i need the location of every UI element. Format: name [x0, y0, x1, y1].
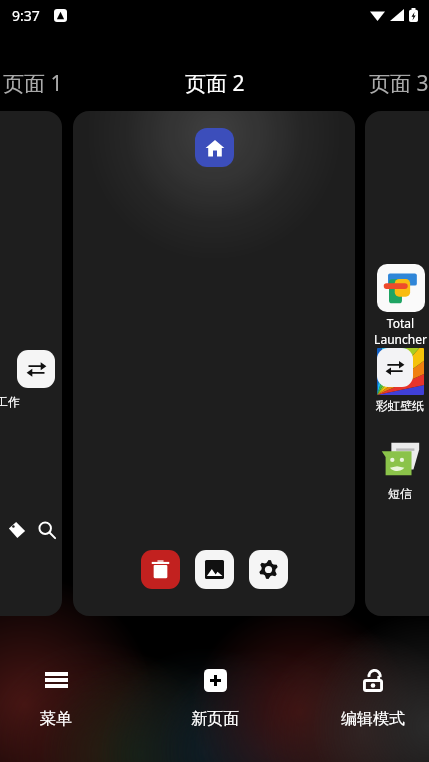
button[interactable]: 编辑模式 — [314, 662, 429, 735]
staticText: 工作 — [0, 394, 20, 409]
button[interactable]: Delete — [141, 550, 180, 589]
button[interactable]: Home — [73, 111, 355, 616]
staticText: 9:37 — [12, 6, 40, 25]
button[interactable]: Total Launcher — [365, 111, 429, 616]
button[interactable]: Total Launcher — [368, 264, 429, 347]
staticText: 菜单 — [40, 709, 72, 729]
button[interactable]: Settings — [249, 550, 288, 589]
button[interactable]: Home — [195, 128, 234, 167]
staticText: 短信 — [388, 486, 412, 501]
staticText: 编辑模式 — [341, 709, 405, 729]
button[interactable]: 短信 — [368, 435, 429, 501]
button[interactable]: 菜单 — [0, 662, 115, 735]
staticText: Total Launcher — [374, 315, 427, 347]
staticText: 彩虹壁纸 — [376, 398, 424, 413]
staticText: 新页面 — [191, 709, 239, 729]
staticText: 页面 3 — [369, 69, 429, 98]
button[interactable]: 工作 — [0, 111, 62, 616]
staticText: 页面 2 — [185, 69, 245, 98]
staticText: 页面 1 — [3, 69, 63, 98]
button[interactable]: Wallpaper — [195, 550, 234, 589]
button[interactable]: 彩虹壁纸 — [368, 348, 429, 413]
button[interactable]: 新页面 — [156, 662, 274, 735]
